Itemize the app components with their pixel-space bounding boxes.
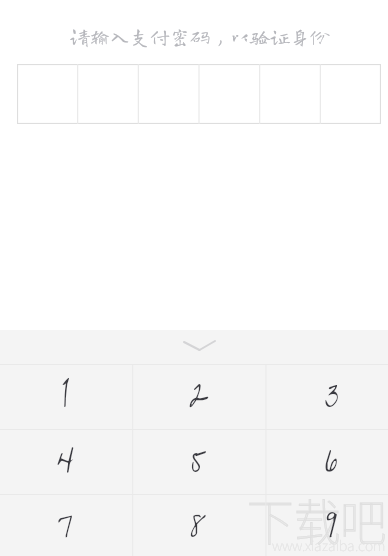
staticText: 9 — [326, 505, 338, 539]
staticText: 3 — [325, 375, 339, 409]
button[interactable]: 4 — [0, 430, 132, 494]
staticText: 5 — [191, 440, 207, 474]
staticText: 8 — [190, 505, 207, 539]
button[interactable]: 3 — [265, 365, 388, 429]
button[interactable]: 6 — [265, 430, 388, 494]
button[interactable]: 1 — [0, 365, 132, 429]
button[interactable]: 2 — [132, 365, 265, 429]
button[interactable]: 8 — [132, 495, 265, 556]
staticText: 2 — [189, 375, 209, 409]
staticText: 请输入支付密码，以验证身份 — [70, 26, 330, 46]
button[interactable]: 9 — [265, 495, 388, 556]
staticText: 7 — [58, 505, 73, 539]
staticText: 1 — [61, 375, 70, 409]
button[interactable]: 7 — [0, 495, 132, 556]
staticText: 6 — [325, 440, 338, 474]
button[interactable]: 5 — [132, 430, 265, 494]
staticText: 4 — [57, 440, 74, 474]
